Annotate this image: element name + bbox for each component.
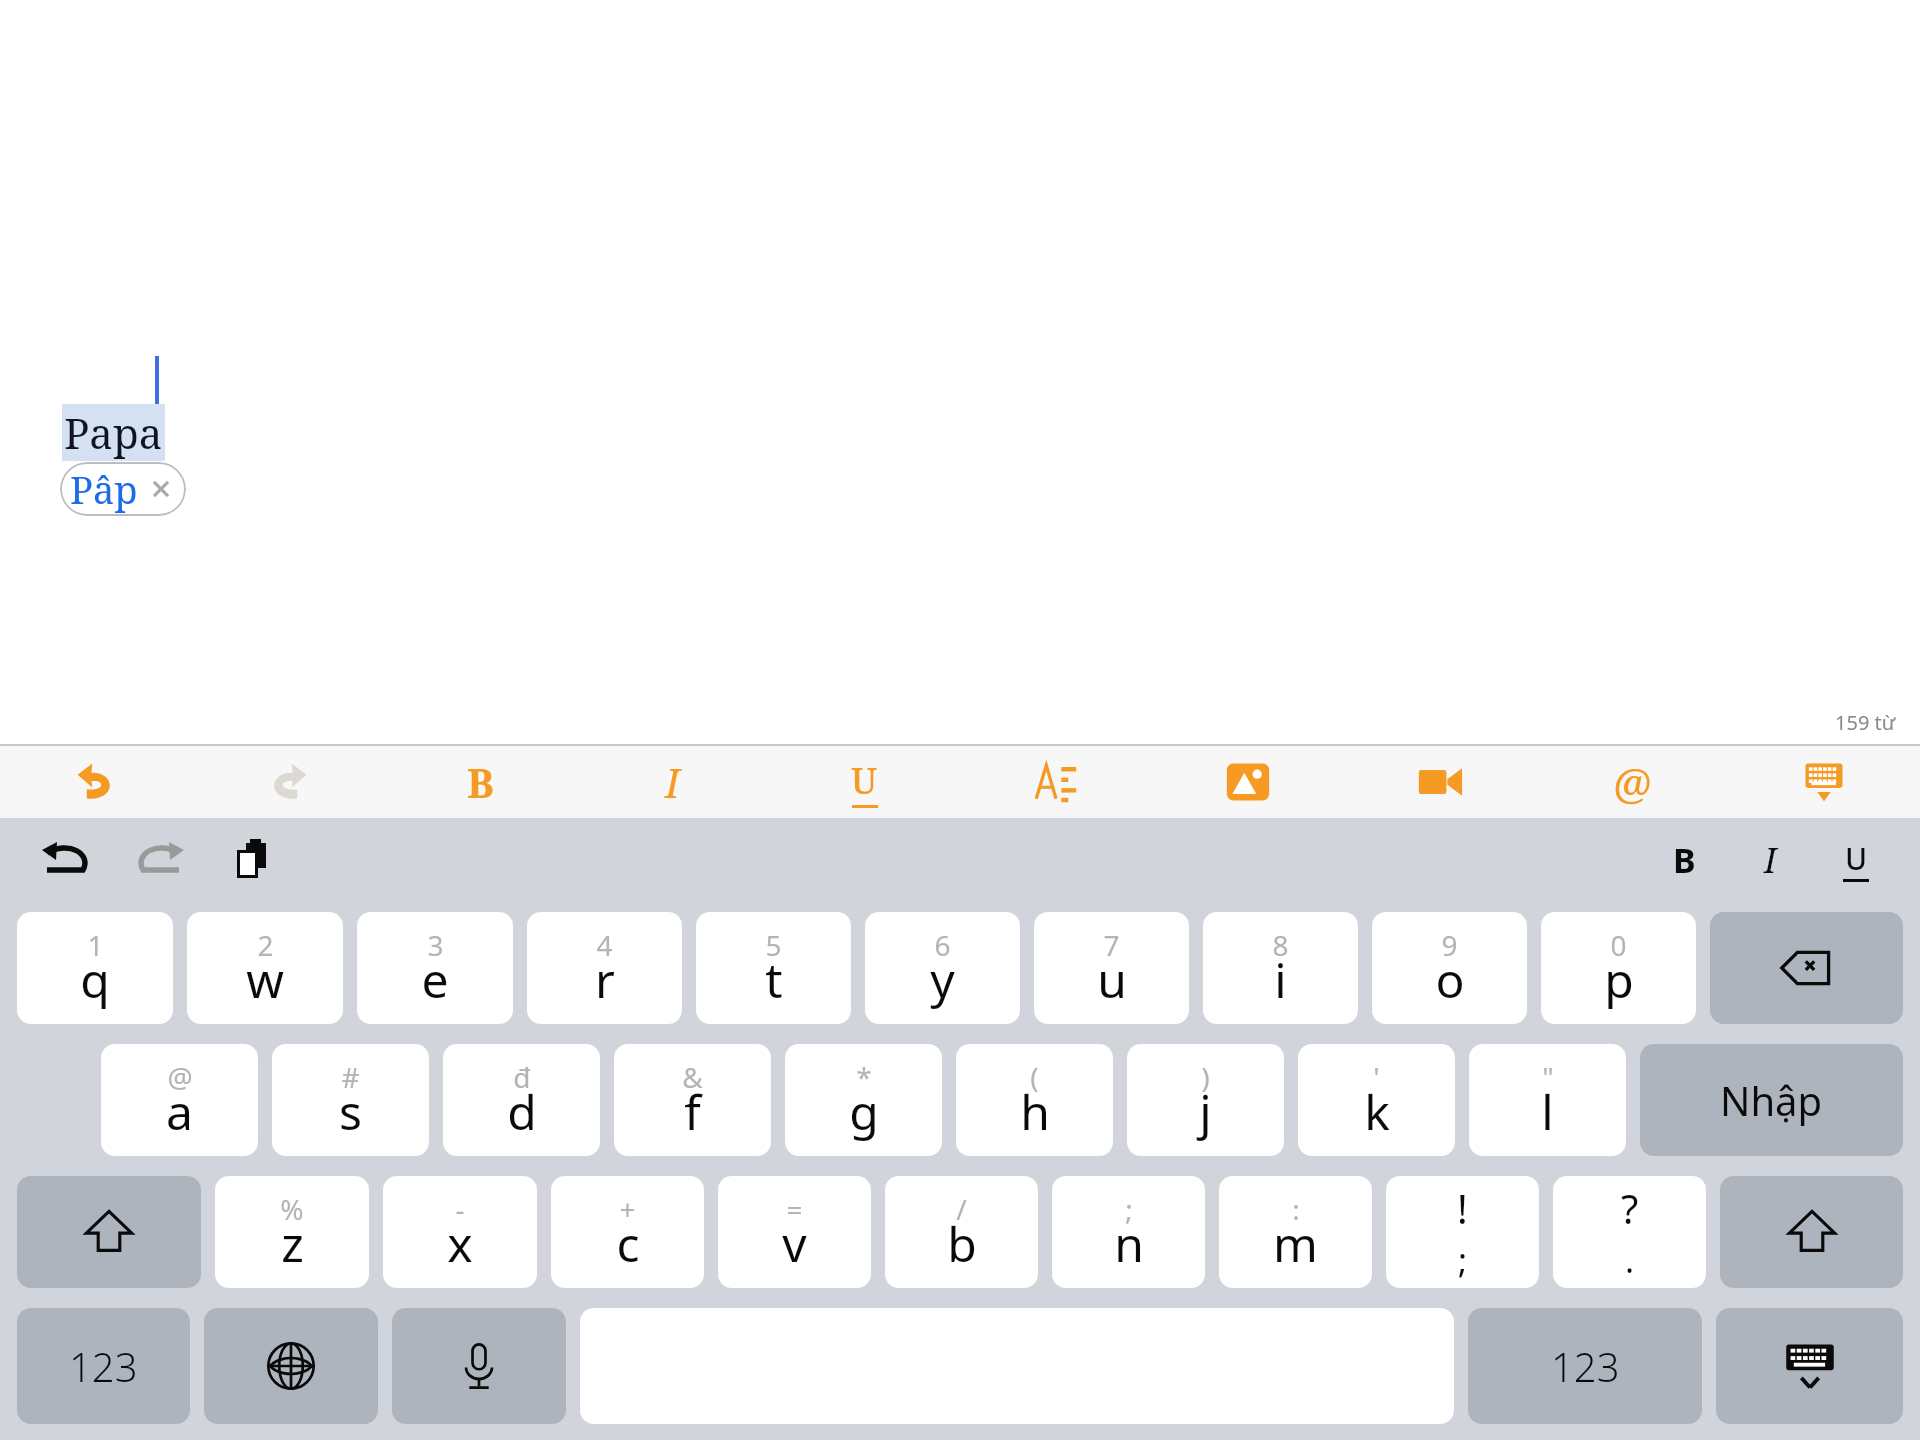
button[interactable]: Insert video	[1344, 746, 1536, 818]
staticText: I	[1764, 837, 1777, 883]
button[interactable]: Mention	[1536, 746, 1728, 818]
staticText: b	[947, 1211, 977, 1276]
button[interactable]: Styles	[960, 746, 1152, 818]
button[interactable]: )	[1127, 1044, 1284, 1156]
button[interactable]: Nhập	[1640, 1044, 1903, 1156]
staticText: 123	[69, 1339, 138, 1393]
button[interactable]: Undo	[34, 828, 98, 892]
button[interactable]: 123	[1468, 1308, 1702, 1424]
staticText: c	[616, 1211, 640, 1276]
button[interactable]: 1	[17, 912, 173, 1024]
staticText: B	[467, 755, 494, 809]
button[interactable]: đ	[443, 1044, 600, 1156]
button[interactable]: :	[1219, 1176, 1372, 1288]
staticText: n	[1114, 1211, 1144, 1276]
staticText: '	[1373, 1058, 1380, 1096]
staticText: "	[1542, 1058, 1554, 1096]
button[interactable]: 5	[696, 912, 851, 1024]
button[interactable]: Backspace	[1710, 912, 1903, 1024]
button[interactable]: 8	[1203, 912, 1358, 1024]
button[interactable]: /	[885, 1176, 1038, 1288]
button[interactable]: Voice input	[392, 1308, 566, 1424]
button[interactable]: 123	[17, 1308, 190, 1424]
staticText: &	[682, 1058, 703, 1096]
button[interactable]: Underline	[768, 746, 960, 818]
staticText: s	[339, 1079, 362, 1144]
button[interactable]: (	[956, 1044, 1113, 1156]
staticText: )	[1201, 1058, 1210, 1096]
staticText: r	[595, 947, 615, 1012]
button[interactable]: *	[785, 1044, 942, 1156]
button[interactable]: I	[1740, 830, 1800, 890]
staticText: y	[930, 947, 955, 1012]
button[interactable]: 3	[357, 912, 513, 1024]
button[interactable]: ;	[1052, 1176, 1205, 1288]
button[interactable]: 7	[1034, 912, 1189, 1024]
staticText: U	[1845, 838, 1868, 879]
button[interactable]: Hide keyboard	[1716, 1308, 1903, 1424]
staticText: k	[1364, 1079, 1390, 1144]
staticText: d	[507, 1079, 537, 1144]
button[interactable]: #	[272, 1044, 429, 1156]
staticText: B	[1673, 837, 1696, 883]
staticText: a	[166, 1079, 193, 1144]
button[interactable]: Undo	[0, 746, 192, 818]
button[interactable]: +	[551, 1176, 704, 1288]
button[interactable]: Hide keyboard	[1728, 746, 1920, 818]
button[interactable]: %	[215, 1176, 369, 1288]
button[interactable]: =	[718, 1176, 871, 1288]
button[interactable]: 6	[865, 912, 1020, 1024]
staticText: .	[1625, 1237, 1635, 1283]
staticText: @	[1613, 754, 1652, 811]
staticText: x	[447, 1211, 473, 1276]
button[interactable]: Change language	[204, 1308, 378, 1424]
button[interactable]: !	[1386, 1176, 1539, 1288]
staticText: 6	[934, 926, 951, 964]
staticText: U	[851, 756, 878, 805]
button[interactable]: Shift	[17, 1176, 201, 1288]
staticText: *	[856, 1058, 872, 1096]
button[interactable]: ?	[1553, 1176, 1706, 1288]
staticText: e	[421, 947, 449, 1012]
staticText: 159 từ	[1835, 709, 1896, 736]
staticText: 8	[1272, 926, 1289, 964]
button[interactable]: Bold	[384, 746, 576, 818]
staticText: 3	[427, 926, 444, 964]
staticText: p	[1604, 947, 1634, 1012]
staticText: v	[782, 1211, 807, 1276]
staticText: o	[1435, 947, 1465, 1012]
button[interactable]: &	[614, 1044, 771, 1156]
button[interactable]: Italic	[576, 746, 768, 818]
staticText: Papa	[64, 404, 163, 461]
staticText: 5	[765, 926, 782, 964]
staticText: 4	[596, 926, 613, 964]
button[interactable]: '	[1298, 1044, 1455, 1156]
button[interactable]: 2	[187, 912, 343, 1024]
button[interactable]: Paste	[222, 828, 286, 892]
button[interactable]: U	[1826, 830, 1886, 890]
button[interactable]: Insert image	[1152, 746, 1344, 818]
staticText: t	[765, 947, 783, 1012]
staticText: z	[281, 1211, 304, 1276]
staticText: Pâp	[70, 463, 138, 515]
staticText: ?	[1621, 1181, 1639, 1235]
staticText: l	[1541, 1079, 1554, 1144]
staticText: 0	[1610, 926, 1627, 964]
button[interactable]: 0	[1541, 912, 1696, 1024]
button[interactable]: Shift	[1720, 1176, 1903, 1288]
staticText: Nhập	[1720, 1073, 1823, 1127]
button[interactable]: -	[383, 1176, 537, 1288]
button[interactable]: 4	[527, 912, 682, 1024]
staticText: I	[665, 755, 680, 809]
button[interactable]: 9	[1372, 912, 1527, 1024]
button[interactable]: Redo	[128, 828, 192, 892]
button[interactable]: Redo	[192, 746, 384, 818]
button[interactable]: B	[1654, 830, 1714, 890]
button[interactable]: Pâp	[60, 462, 186, 516]
staticText: @	[167, 1058, 193, 1096]
button[interactable]: @	[101, 1044, 258, 1156]
staticText: :	[1292, 1190, 1300, 1228]
staticText: =	[786, 1190, 803, 1228]
button[interactable]: "	[1469, 1044, 1626, 1156]
